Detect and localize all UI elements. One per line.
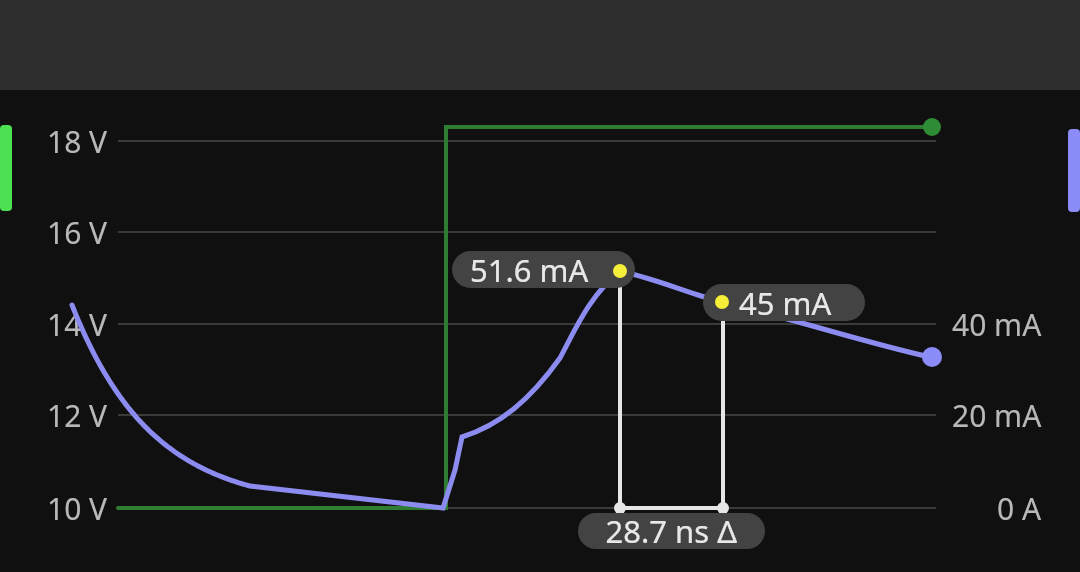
button[interactable]: Oscilloscope chart (0, 0, 1080, 572)
